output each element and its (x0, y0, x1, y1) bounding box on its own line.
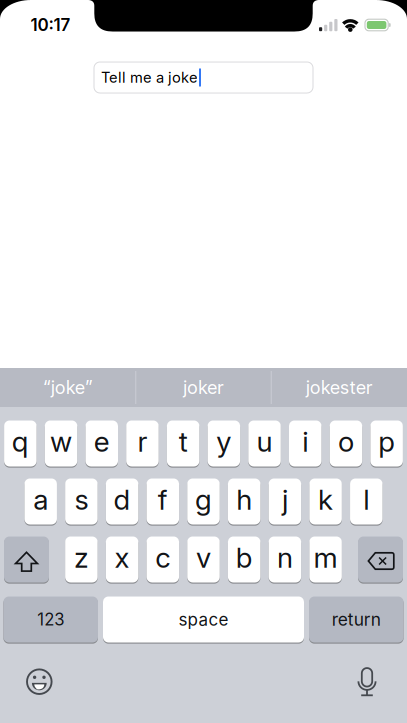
staticText: 123 (37, 609, 64, 630)
staticText: k (318, 483, 333, 516)
button[interactable]: q (4, 420, 37, 466)
button[interactable]: d (106, 478, 138, 524)
button[interactable]: Tell me a joke (94, 62, 313, 93)
button[interactable]: o (330, 420, 362, 466)
button[interactable] (345, 660, 389, 704)
staticText: y (216, 425, 231, 458)
button[interactable]: y (208, 420, 240, 466)
button[interactable]: v (187, 536, 220, 582)
button[interactable]: c (147, 536, 179, 582)
staticText: j (282, 483, 288, 516)
button[interactable]: 123 (3, 596, 98, 642)
staticText: return (332, 609, 381, 630)
staticText: v (196, 541, 211, 574)
staticText: joker (183, 377, 224, 398)
button[interactable]: m (309, 536, 342, 582)
staticText: m (314, 541, 338, 574)
staticText: f (158, 483, 168, 516)
staticText: b (236, 541, 253, 574)
button[interactable]: r (126, 420, 159, 466)
staticText: 10:17 (30, 14, 70, 35)
button[interactable] (358, 536, 403, 582)
button[interactable] (17, 660, 61, 704)
button[interactable]: l (350, 478, 383, 524)
staticText: e (94, 425, 110, 458)
staticText: l (363, 483, 369, 516)
staticText: q (12, 425, 29, 458)
staticText: d (114, 483, 131, 516)
staticText: “joke” (43, 377, 93, 398)
staticText: x (115, 541, 130, 574)
staticText: u (257, 425, 273, 458)
button[interactable]: “joke” (3, 368, 133, 407)
button[interactable]: g (187, 478, 220, 524)
button[interactable]: n (269, 536, 301, 582)
staticText: o (338, 425, 354, 458)
staticText: space (178, 609, 228, 630)
staticText: p (378, 425, 395, 458)
button[interactable] (4, 536, 49, 582)
button[interactable]: s (65, 478, 98, 524)
button[interactable]: k (309, 478, 342, 524)
staticText: h (236, 483, 252, 516)
button[interactable]: space (103, 596, 304, 642)
staticText: r (137, 425, 147, 458)
staticText: i (302, 425, 308, 458)
staticText: n (277, 541, 293, 574)
button[interactable]: a (24, 478, 57, 524)
button[interactable]: x (106, 536, 138, 582)
staticText: s (74, 483, 88, 516)
button[interactable]: p (370, 420, 403, 466)
staticText: jokester (306, 377, 373, 398)
button[interactable]: h (228, 478, 260, 524)
button[interactable]: u (248, 420, 281, 466)
staticText: c (155, 541, 170, 574)
button[interactable]: e (85, 420, 118, 466)
staticText: w (50, 425, 72, 458)
button[interactable]: b (228, 536, 260, 582)
button[interactable]: z (65, 536, 98, 582)
button[interactable]: joker (138, 368, 268, 407)
staticText: t (179, 425, 188, 458)
button[interactable]: f (147, 478, 179, 524)
staticText: g (195, 483, 212, 516)
staticText: z (74, 541, 89, 574)
button[interactable]: w (45, 420, 77, 466)
staticText: Tell me a joke (101, 69, 198, 86)
staticText: a (33, 483, 48, 516)
button[interactable]: t (167, 420, 199, 466)
button[interactable]: jokester (274, 368, 404, 407)
button[interactable]: j (269, 478, 301, 524)
button[interactable]: i (289, 420, 321, 466)
button[interactable]: return (309, 596, 404, 642)
